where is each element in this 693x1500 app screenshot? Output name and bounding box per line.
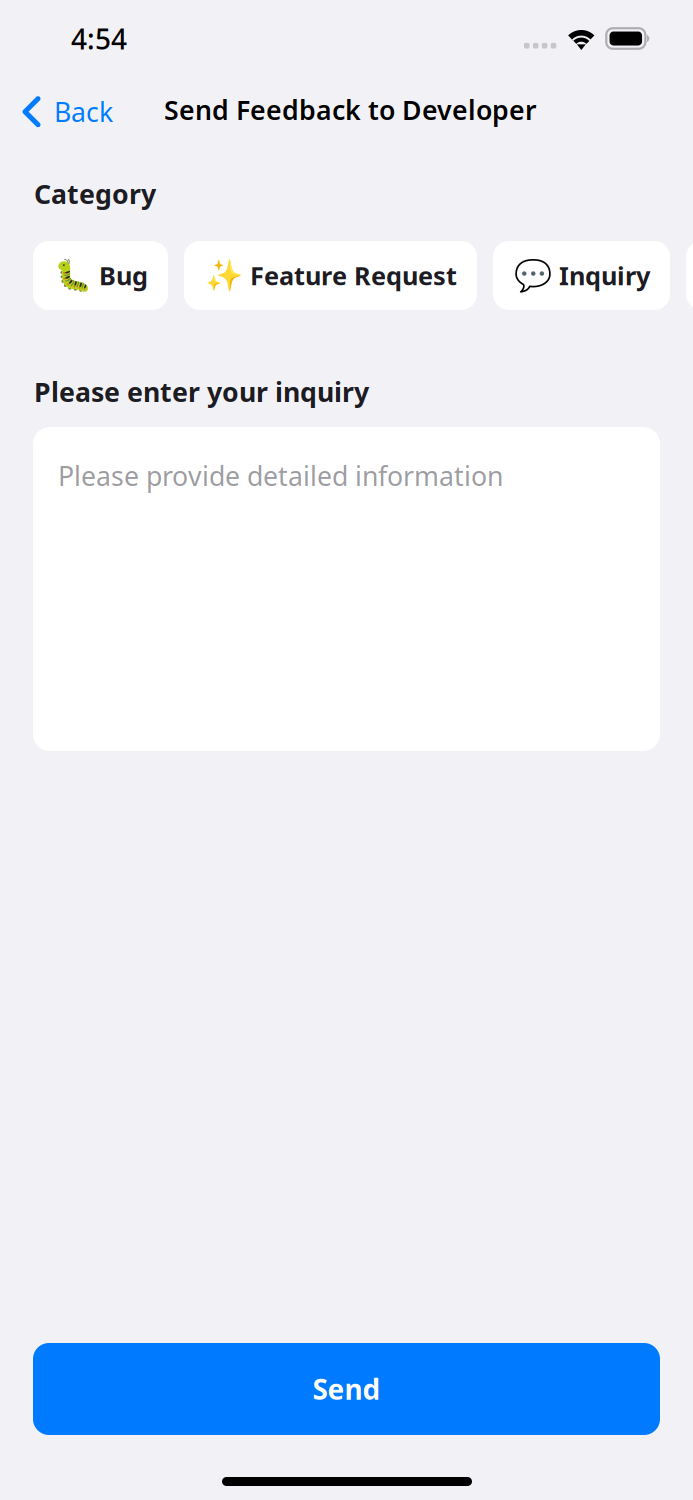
staticText: Inquiry <box>559 259 650 292</box>
button[interactable]: Bug <box>33 241 168 310</box>
button[interactable]: Inquiry <box>493 241 670 310</box>
staticText: Category <box>34 176 156 211</box>
staticText: 4:54 <box>71 20 127 57</box>
staticText: Bug <box>99 259 148 292</box>
staticText: Please enter your inquiry <box>34 374 369 409</box>
button[interactable]: Feature Request <box>184 241 477 310</box>
staticText: Send <box>312 1370 380 1408</box>
staticText: Back <box>54 94 113 129</box>
staticText: 🐛 <box>54 258 92 293</box>
staticText: Feature Request <box>250 259 457 292</box>
button[interactable]: Please provide detailed information <box>33 427 660 751</box>
staticText: ✨ <box>205 258 243 293</box>
button[interactable]: Send <box>33 1343 660 1435</box>
button[interactable]: Back <box>12 84 123 139</box>
staticText: Please provide detailed information <box>58 458 503 493</box>
staticText: Send Feedback to Developer <box>164 92 537 127</box>
button[interactable]: Thanks <box>686 241 693 310</box>
staticText: 💬 <box>514 258 552 293</box>
